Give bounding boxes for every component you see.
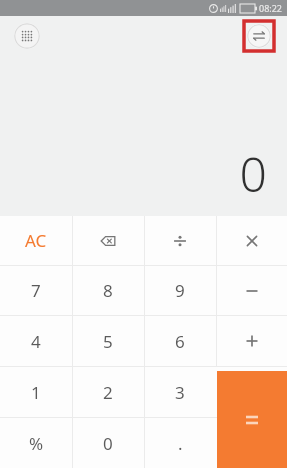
other: Minus: [241, 280, 263, 302]
other: Plus: [241, 330, 263, 352]
staticText: 8: [103, 279, 113, 302]
staticText: 7: [31, 279, 41, 302]
button[interactable]: %: [0, 418, 72, 468]
button[interactable]: .: [144, 418, 216, 468]
button[interactable]: History: [14, 23, 40, 49]
staticText: .: [178, 432, 183, 455]
button[interactable]: Divide: [144, 216, 216, 265]
staticText: 4: [31, 330, 41, 353]
staticText: 0: [103, 432, 113, 455]
button[interactable]: Plus: [216, 316, 287, 366]
staticText: 9: [175, 279, 185, 302]
staticText: AC: [25, 229, 47, 252]
other: Divide: [169, 230, 191, 252]
staticText: 5: [103, 330, 113, 353]
staticText: %: [29, 432, 44, 455]
button[interactable]: AC: [0, 216, 72, 265]
staticText: 6: [175, 330, 185, 353]
button[interactable]: 3: [144, 367, 216, 417]
button[interactable]: 9: [144, 266, 216, 315]
staticText: 1: [31, 381, 41, 404]
other: Multiply: [241, 230, 263, 252]
button[interactable]: Backspace: [72, 216, 144, 265]
button[interactable]: 4: [0, 316, 72, 366]
button[interactable]: 2: [72, 367, 144, 417]
other: Backspace: [97, 230, 119, 252]
staticText: 0: [239, 141, 267, 206]
button[interactable]: 1: [0, 367, 72, 417]
staticText: 08:22: [259, 2, 283, 14]
button[interactable]: 5: [72, 316, 144, 366]
button[interactable]: 6: [144, 316, 216, 366]
button[interactable]: 0: [72, 418, 144, 468]
staticText: 2: [103, 381, 113, 404]
button[interactable]: Switch mode: [247, 24, 271, 48]
button[interactable]: Minus: [216, 266, 287, 315]
staticText: 3: [175, 381, 185, 404]
button[interactable]: 8: [72, 266, 144, 315]
button[interactable]: Equals: [217, 371, 287, 468]
button[interactable]: Multiply: [216, 216, 287, 265]
button[interactable]: 7: [0, 266, 72, 315]
